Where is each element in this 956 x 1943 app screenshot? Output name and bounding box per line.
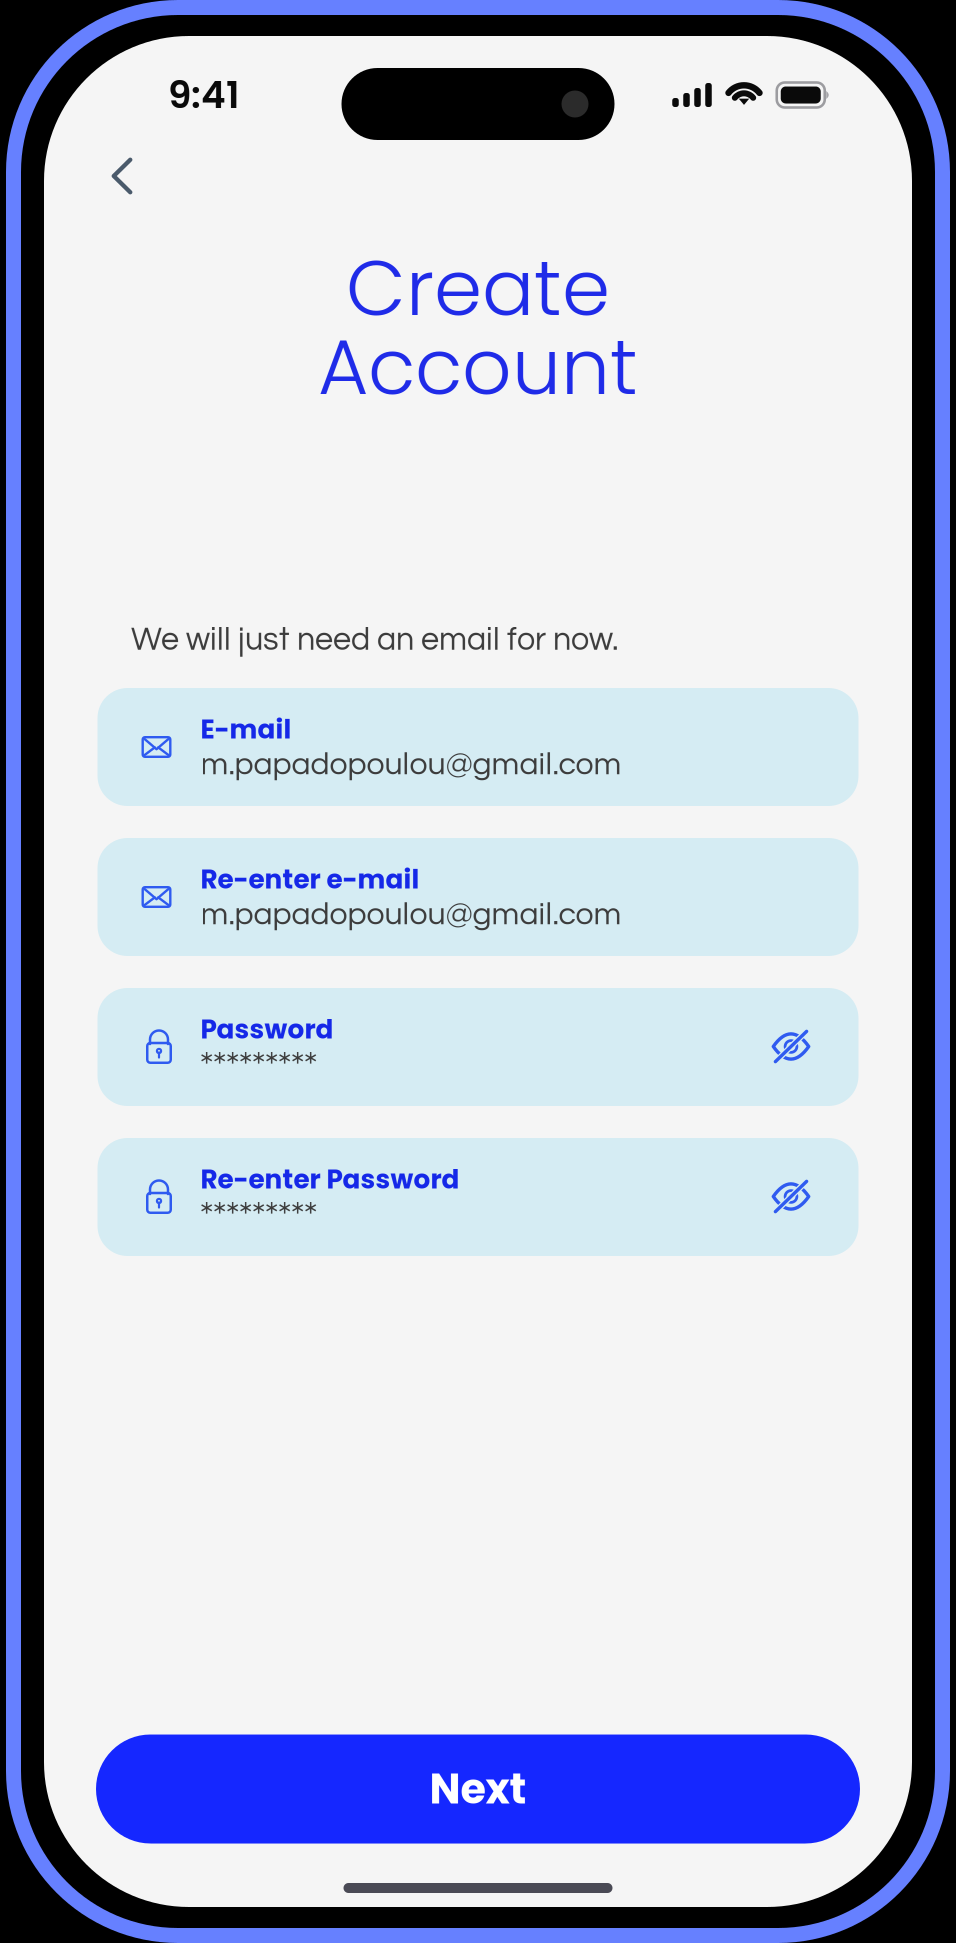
- button[interactable]: Password: [97, 988, 858, 1106]
- staticText: We will just need an email for now.: [131, 623, 619, 657]
- staticText: E-mail: [200, 711, 291, 748]
- staticText: Re-enter e-mail: [200, 861, 419, 898]
- staticText: Account: [318, 313, 638, 421]
- staticText: m.papadopoulou@gmail.com: [200, 898, 621, 931]
- button[interactable]: Re-enter Password: [97, 1138, 858, 1256]
- button[interactable]: Back: [88, 142, 156, 210]
- button[interactable]: Re-enter e-mail: [97, 838, 858, 956]
- staticText: Re-enter Password: [200, 1161, 459, 1198]
- staticText: Next: [429, 1760, 526, 1818]
- staticText: Create: [346, 234, 610, 342]
- staticText: *********: [200, 1045, 316, 1084]
- staticText: Password: [200, 1011, 333, 1048]
- button[interactable]: E-mail: [97, 688, 858, 806]
- staticText: m.papadopoulou@gmail.com: [200, 748, 621, 781]
- staticText: *********: [200, 1195, 316, 1234]
- button[interactable]: Next: [96, 1734, 860, 1843]
- staticText: 9:41: [168, 69, 240, 121]
